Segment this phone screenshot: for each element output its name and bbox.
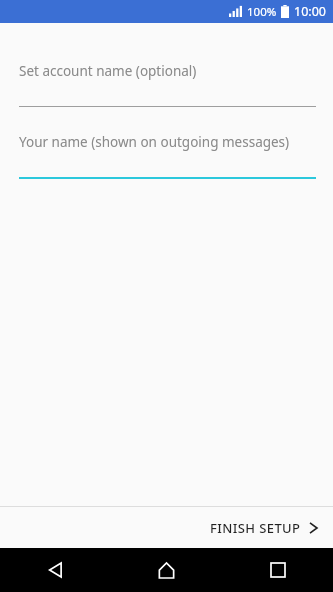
- staticText: 100%: [247, 4, 277, 20]
- button[interactable]: FINISH SETUP: [196, 511, 333, 545]
- staticText: 10:00: [294, 3, 326, 20]
- button[interactable]: Recent apps: [222, 548, 333, 592]
- button[interactable]: Your name (shown on outgoing messages): [0, 133, 333, 179]
- button[interactable]: Back: [0, 548, 111, 592]
- staticText: FINISH SETUP: [210, 519, 301, 537]
- staticText: Your name (shown on outgoing messages): [19, 133, 290, 151]
- staticText: Set account name (optional): [19, 62, 197, 80]
- button[interactable]: Set account name (optional): [0, 62, 333, 107]
- button[interactable]: Home: [111, 548, 222, 592]
